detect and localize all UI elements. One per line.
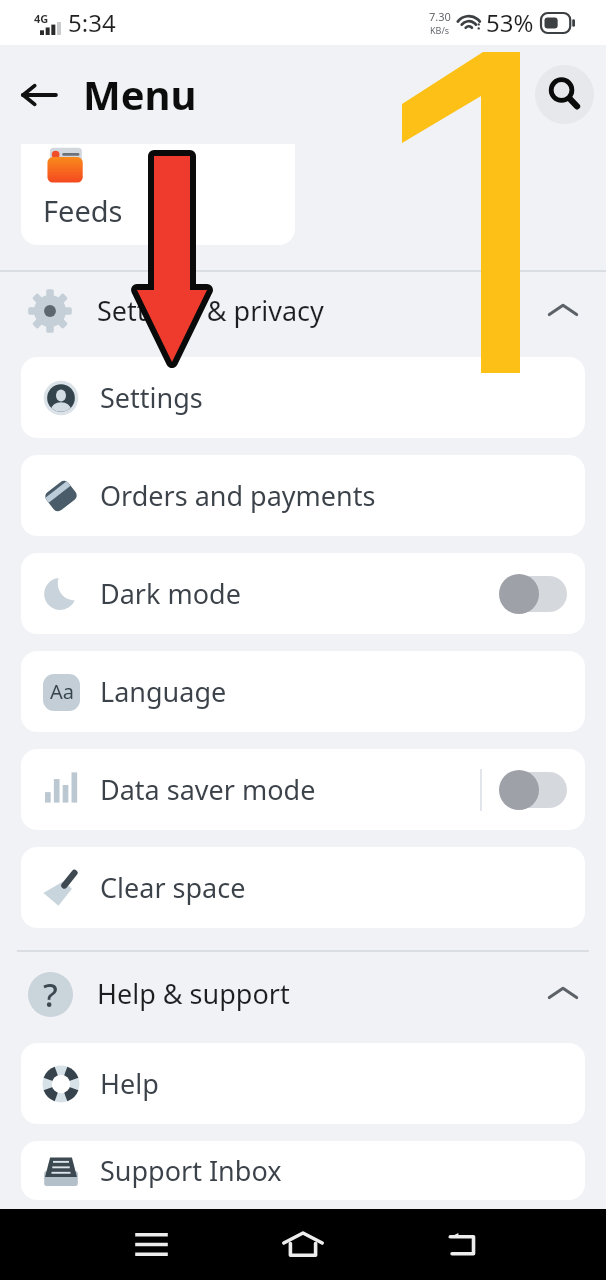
button[interactable]: Clear space [21,847,585,928]
staticText: KB/s [430,24,450,36]
staticText: Data saver mode [100,771,316,808]
button[interactable]: Data saver mode toggle [498,762,572,818]
staticText: Dark mode [100,575,241,612]
button[interactable]: Settings [21,357,585,438]
staticText: 4G [34,11,49,26]
button[interactable]: Settings & privacy [0,272,606,349]
button[interactable]: Home [253,1209,353,1280]
button[interactable]: Feeds [21,144,295,245]
staticText: ? [43,972,58,1014]
button[interactable]: Back [12,68,66,122]
button[interactable]: Recent apps [101,1209,201,1280]
staticText: Clear space [100,869,246,906]
staticText: Orders and payments [100,477,376,514]
button[interactable]: Orders and payments [21,455,585,536]
staticText: Settings [100,379,203,416]
staticText: Feeds [43,191,123,230]
staticText: Aa [50,678,74,705]
button[interactable]: Help [21,1043,585,1124]
button[interactable]: Search [535,65,594,124]
staticText: Help & support [97,975,290,1012]
staticText: 7.30 [429,9,451,24]
staticText: Help [100,1065,159,1102]
staticText: Menu [83,67,197,121]
button[interactable]: Dark mode [21,553,585,634]
button[interactable]: Support Inbox [21,1141,585,1200]
staticText: Support Inbox [100,1152,282,1189]
staticText: Language [100,673,227,710]
staticText: 53% [486,6,534,39]
button[interactable]: Dark mode toggle [498,566,572,622]
button[interactable]: ? [0,952,606,1035]
staticText: 5:34 [68,6,116,39]
button[interactable]: Data saver mode [21,749,585,830]
button[interactable]: Aa [21,651,585,732]
button[interactable]: Back [412,1209,512,1280]
staticText: Settings & privacy [97,292,324,329]
